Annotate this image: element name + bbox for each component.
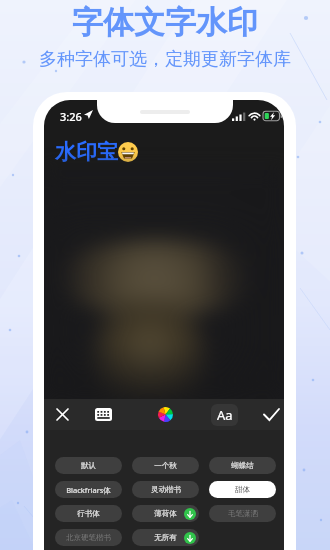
button[interactable]: Aa: [208, 399, 240, 430]
button[interactable]: Blackfriars体: [55, 481, 122, 498]
staticText: 蝴蝶结: [231, 461, 254, 470]
button[interactable]: 灵动楷书: [132, 481, 199, 498]
button[interactable]: 薄荷体: [132, 505, 199, 522]
staticText: Aa: [217, 406, 233, 424]
button[interactable]: 北京硬笔楷书: [55, 529, 122, 546]
staticText: 字体文字水印: [72, 3, 258, 42]
staticText: 甜体: [235, 485, 250, 494]
staticText: 3:26: [60, 109, 82, 124]
staticText: 毛笔潇洒: [228, 509, 258, 518]
button[interactable]: Done: [257, 399, 284, 430]
button[interactable]: 行书体: [55, 505, 122, 522]
staticText: Blackfriars体: [66, 485, 111, 495]
staticText: 水印宝: [55, 139, 118, 165]
staticText: 默认: [81, 461, 96, 470]
button[interactable]: Keyboard: [89, 399, 117, 430]
button[interactable]: 毛笔潇洒: [209, 505, 276, 522]
staticText: 一个秋: [154, 461, 177, 470]
button[interactable]: 蝴蝶结: [209, 457, 276, 474]
staticText: 无所有: [154, 533, 177, 542]
button[interactable]: Colour: [150, 399, 180, 430]
button[interactable]: 无所有: [132, 529, 199, 546]
staticText: 薄荷体: [154, 509, 177, 518]
button[interactable]: Close: [48, 399, 76, 430]
staticText: 北京硬笔楷书: [66, 533, 111, 542]
button[interactable]: 一个秋: [132, 457, 199, 474]
button[interactable]: 甜体: [209, 481, 276, 498]
button[interactable]: 默认: [55, 457, 122, 474]
staticText: 行书体: [77, 509, 100, 518]
staticText: 多种字体可选，定期更新字体库: [39, 48, 291, 71]
staticText: 灵动楷书: [151, 485, 181, 494]
